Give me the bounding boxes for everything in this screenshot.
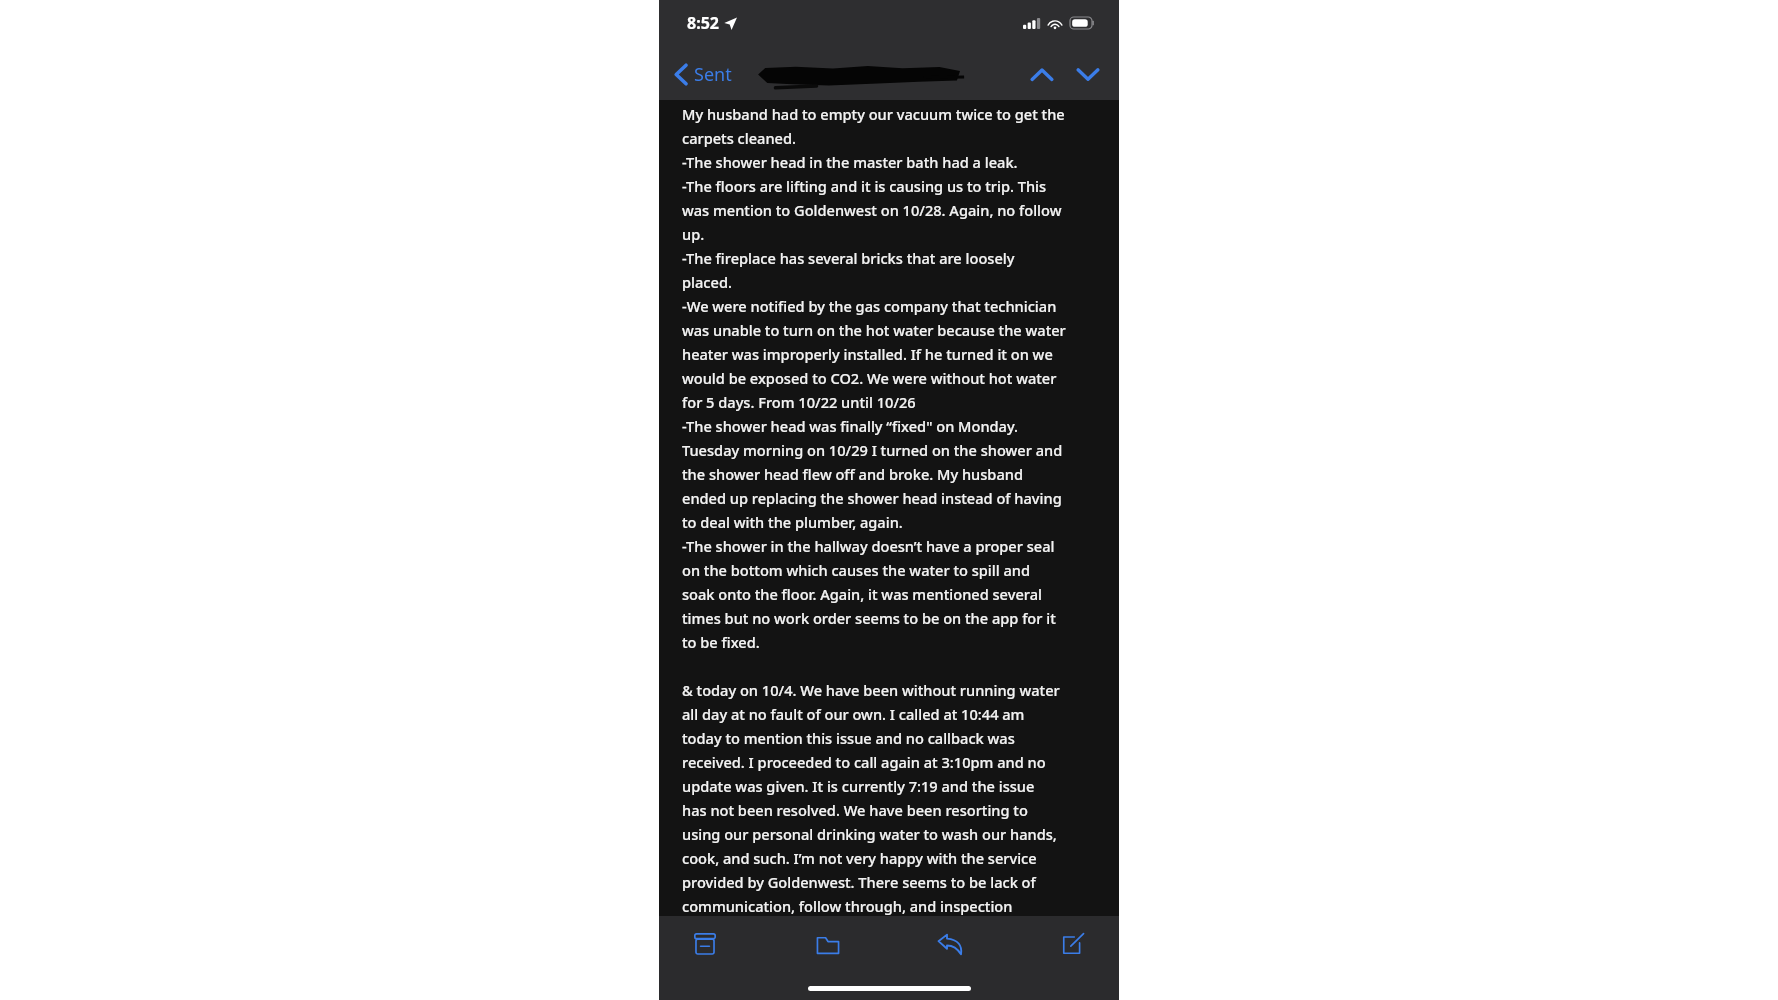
staticText: today to mention this issue and no callb…: [682, 728, 1015, 748]
staticText: Sent: [694, 62, 732, 87]
staticText: all day at no fault of our own. I called…: [682, 704, 1025, 724]
staticText: heater was improperly installed. If he t…: [682, 344, 1053, 364]
staticText: up.: [682, 224, 705, 244]
button[interactable]: Previous message: [1025, 57, 1059, 91]
staticText: to be fixed.: [682, 632, 760, 652]
button[interactable]: Sent: [669, 56, 738, 93]
staticText: carpets cleaned.: [682, 128, 796, 148]
staticText: cook, and such. I’m not very happy with …: [682, 848, 1037, 868]
staticText: was unable to turn on the hot water beca…: [682, 320, 1066, 340]
button[interactable]: Compose: [1047, 918, 1099, 970]
button[interactable]: Reply: [924, 918, 976, 970]
staticText: was mention to Goldenwest on 10/28. Agai…: [682, 200, 1062, 220]
staticText: to deal with the plumber, again.: [682, 512, 903, 532]
staticText: 8:52: [687, 12, 719, 34]
staticText: has not been resolved. We have been reso…: [682, 800, 1028, 820]
staticText: placed.: [682, 272, 732, 292]
button[interactable]: Archive: [679, 918, 731, 970]
staticText: for 5 days. From 10/22 until 10/26: [682, 392, 916, 412]
staticText: communication, follow through, and inspe…: [682, 896, 1013, 916]
staticText: on the bottom which causes the water to …: [682, 560, 1031, 580]
staticText: provided by Goldenwest. There seems to b…: [682, 872, 1036, 892]
staticText: using our personal drinking water to was…: [682, 824, 1057, 844]
staticText: Tuesday morning on 10/29 I turned on the…: [682, 440, 1063, 460]
staticText: -The shower head was finally “fixed" on …: [682, 416, 1019, 436]
staticText: would be exposed to CO2. We were without…: [682, 368, 1057, 388]
button[interactable]: Move to folder: [802, 918, 854, 970]
button[interactable]: My husband had to empty our vacuum twice…: [659, 100, 1119, 1000]
staticText: & today on 10/4. We have been without ru…: [682, 680, 1060, 700]
staticText: -The shower head in the master bath had …: [682, 152, 1018, 172]
staticText: ended up replacing the shower head inste…: [682, 488, 1062, 508]
staticText: times but no work order seems to be on t…: [682, 608, 1056, 628]
staticText: -We were notified by the gas company tha…: [682, 296, 1057, 316]
staticText: received. I proceeded to call again at 3…: [682, 752, 1046, 772]
staticText: -The floors are lifting and it is causin…: [682, 176, 1047, 196]
staticText: My husband had to empty our vacuum twice…: [682, 104, 1065, 124]
staticText: -The shower in the hallway doesn’t have …: [682, 536, 1055, 556]
staticText: soak onto the floor. Again, it was menti…: [682, 584, 1042, 604]
staticText: -The fireplace has several bricks that a…: [682, 248, 1015, 268]
staticText: update was given. It is currently 7:19 a…: [682, 776, 1035, 796]
staticText: the shower head flew off and broke. My h…: [682, 464, 1023, 484]
button[interactable]: Next message: [1071, 57, 1105, 91]
